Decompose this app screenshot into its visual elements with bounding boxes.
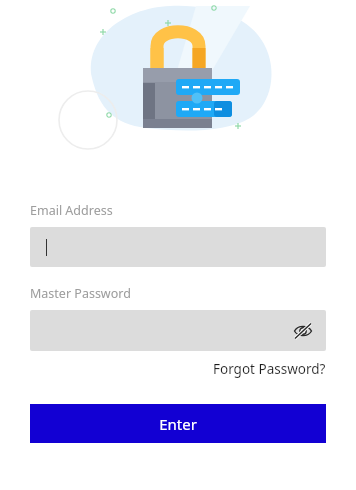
button[interactable]: Forgot Password? — [213, 360, 326, 378]
staticText: Enter — [159, 414, 197, 434]
staticText: Email Address — [30, 202, 113, 219]
staticText: Master Password — [30, 285, 131, 302]
button[interactable]: Enter — [30, 404, 326, 443]
button[interactable] — [30, 227, 326, 267]
button[interactable]: Show password — [30, 310, 326, 351]
button[interactable]: Show password — [292, 320, 314, 342]
staticText: Forgot Password? — [213, 360, 326, 378]
